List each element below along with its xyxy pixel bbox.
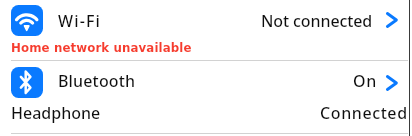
staticText: Home network unavailable xyxy=(11,41,192,55)
button[interactable]: Wi-Fi settings xyxy=(378,9,402,31)
staticText: Not connected xyxy=(261,10,373,32)
button[interactable]: Bluetooth xyxy=(0,61,412,133)
button[interactable]: Wi-Fi xyxy=(0,0,412,60)
staticText: Headphone xyxy=(11,102,101,124)
button[interactable]: Bluetooth settings xyxy=(378,72,402,94)
staticText: Bluetooth xyxy=(58,70,136,92)
staticText: On xyxy=(353,70,377,92)
staticText: Connected xyxy=(320,102,408,124)
staticText: Wi-Fi xyxy=(58,10,102,32)
